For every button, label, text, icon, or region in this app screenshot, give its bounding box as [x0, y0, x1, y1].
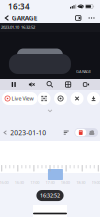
staticText: GARAGE — [76, 69, 91, 74]
staticText: 18:00 — [61, 180, 70, 185]
button[interactable]: Mute — [28, 81, 35, 88]
button[interactable]: Split view — [65, 81, 71, 88]
staticText: GARAGE — [12, 14, 38, 22]
button[interactable]: 2023-01-10 — [3, 127, 46, 138]
staticText: 16:00 — [0, 180, 8, 185]
button[interactable]: Record — [83, 81, 89, 88]
button[interactable]: More options — [87, 14, 96, 21]
button[interactable]: Zoom — [47, 81, 53, 88]
staticText: Live View — [12, 95, 34, 102]
button[interactable]: Download — [87, 92, 100, 105]
button[interactable]: Target — [54, 92, 67, 105]
staticText: 16:30 — [15, 180, 24, 185]
button[interactable]: Recordings — [73, 14, 83, 22]
button[interactable]: Pause — [10, 81, 17, 88]
button[interactable]: SD card storage — [75, 129, 86, 136]
button[interactable]: Filter — [62, 130, 70, 135]
staticText: 17:30 — [45, 180, 54, 185]
button[interactable]: Collapse — [35, 105, 65, 116]
staticText: 18:30 — [76, 180, 85, 185]
button[interactable]: Mosaic — [37, 92, 50, 105]
staticText: 2023-01-10 16:32:52 — [1, 24, 35, 30]
button[interactable]: 16:32:52 — [36, 190, 64, 201]
button[interactable]: Live View — [2, 92, 38, 105]
staticText: 17:00 — [30, 180, 39, 185]
staticText: 2023-01-10 — [10, 128, 46, 137]
button[interactable]: GARAGE — [4, 13, 38, 23]
staticText: 16:34 — [8, 1, 30, 12]
button[interactable]: Cloud storage — [86, 129, 97, 136]
staticText: 16:32:52 — [40, 192, 60, 199]
button[interactable]: Close — [70, 92, 83, 105]
staticText: 19:00 — [91, 180, 100, 185]
